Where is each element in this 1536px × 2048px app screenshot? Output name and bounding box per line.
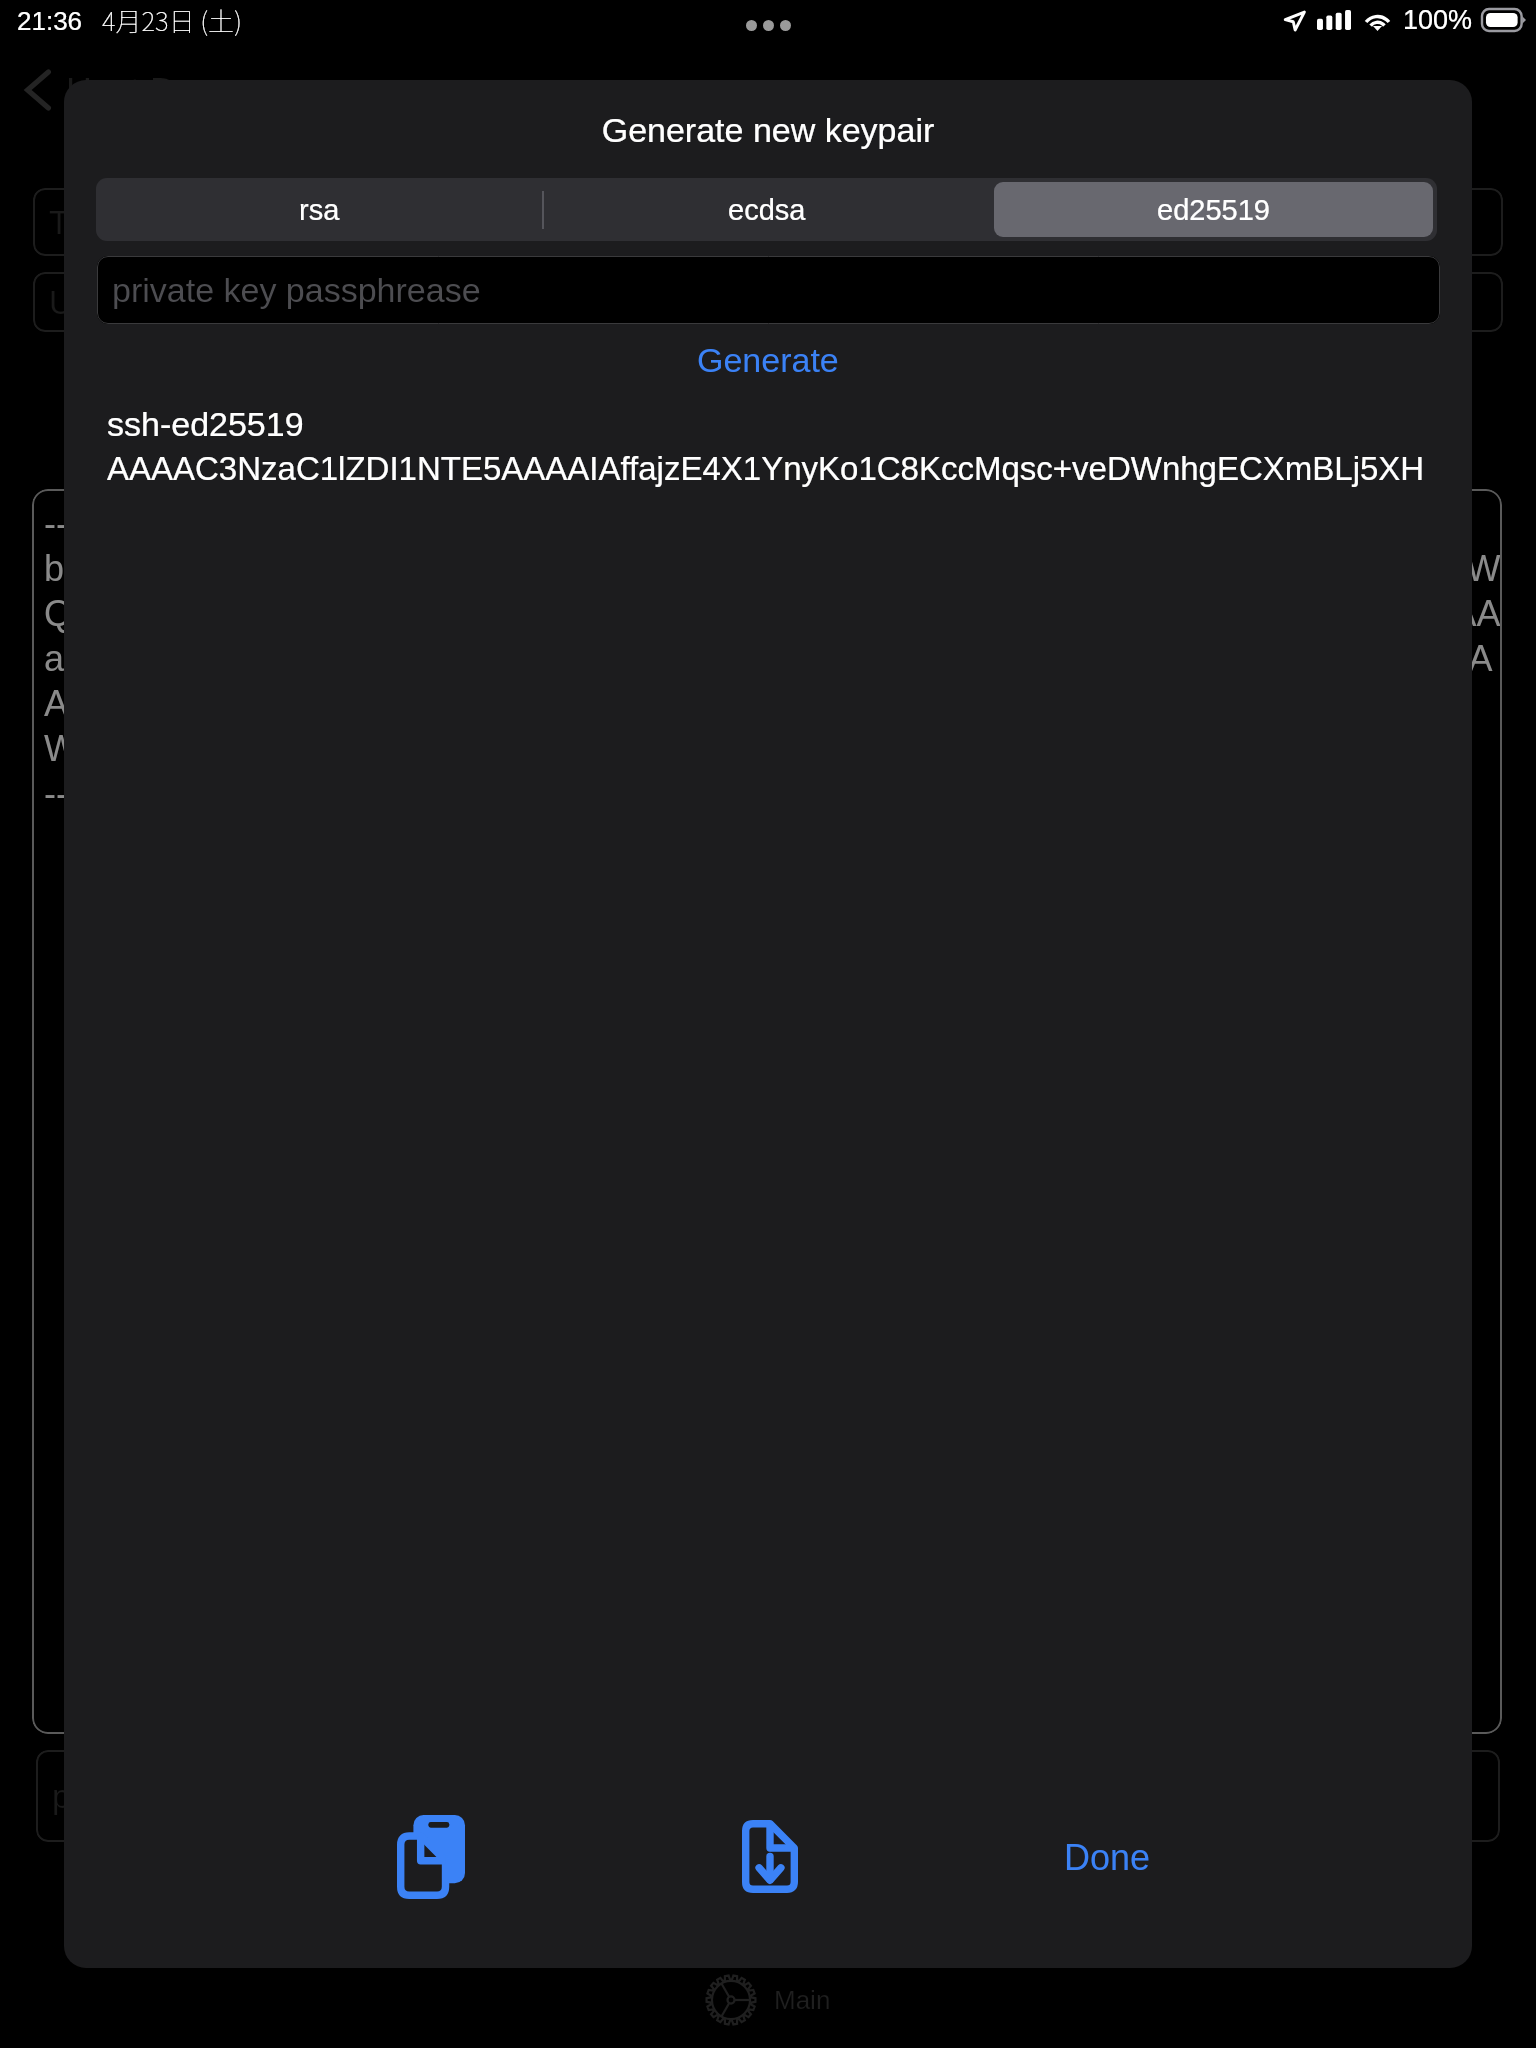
- staticText: ssh-ed25519: [107, 405, 304, 443]
- staticText: aC1lZDI1NTE5AAAAIJfajcweF8WJ0MqHMqcvnvDV…: [44, 638, 1493, 678]
- staticText: ecdsa: [728, 194, 806, 226]
- staticText: -----BEGIN OPENSSH PRIVATE KEY-----: [44, 503, 700, 543]
- staticText: Main: [774, 1985, 831, 2014]
- button[interactable]: Done: [1027, 1795, 1187, 1919]
- staticText: ed25519: [1157, 194, 1270, 226]
- staticText: Host Demo: [66, 71, 247, 111]
- staticText: 4月23日 (土): [102, 1, 242, 39]
- button[interactable]: ecdsa: [547, 182, 986, 237]
- staticText: AAAAC3NzaC1lZDI1NTE5AAAAIAffajzE4X1YnyKo…: [107, 450, 1425, 487]
- button[interactable]: ed25519: [994, 182, 1433, 237]
- button[interactable]: private key passphrease: [97, 256, 1440, 324]
- staticText: private key passphrase: [52, 1778, 392, 1815]
- staticText: Generate: [697, 341, 839, 379]
- staticText: QyNTUxOQAAACCX2o3MHhfFidDKhzKnL57w1Zw4SX…: [44, 593, 1502, 633]
- staticText: Generate new keypair: [64, 111, 1472, 149]
- staticText: b3BlbnNzaC1rZXktdjEAAAAABG5vbmUAAAAEbm9u…: [44, 548, 1501, 588]
- staticText: private key passphrease: [112, 271, 481, 309]
- staticText: AAAAAAAAAAAAAAAAAAAAAAAAAAAAAAAAAAAAAAAA…: [44, 683, 1365, 723]
- staticText: Username: [49, 284, 202, 321]
- staticText: 21:36: [17, 6, 83, 35]
- button[interactable]: Generate: [64, 332, 1472, 388]
- staticText: Done: [1064, 1837, 1151, 1877]
- button[interactable]: Save to file: [722, 1800, 818, 1913]
- staticText: Title: [49, 204, 111, 241]
- staticText: 100%: [1403, 5, 1473, 35]
- staticText: W0M0V0hZVTFkQVdNZ0tBQUFBQUFBQUFBQUFBQUFB…: [44, 728, 1223, 768]
- staticText: -----END OPENSSH PRIVATE KEY-----: [44, 773, 664, 813]
- staticText: rsa: [299, 194, 340, 226]
- button[interactable]: Copy to clipboard: [377, 1795, 485, 1919]
- button[interactable]: rsa: [100, 182, 539, 237]
